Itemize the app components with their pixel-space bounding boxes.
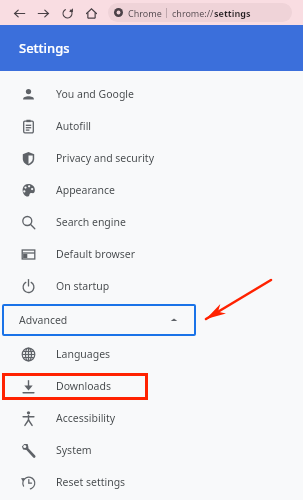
button[interactable]: Back bbox=[10, 4, 28, 22]
staticText: chrome:// bbox=[172, 7, 214, 19]
staticText: settings bbox=[214, 7, 251, 19]
staticText: You and Google bbox=[56, 87, 134, 101]
staticText: Accessibility bbox=[56, 411, 116, 425]
button[interactable]: Default browser bbox=[0, 238, 303, 270]
staticText: On startup bbox=[56, 279, 110, 293]
staticText: Search engine bbox=[56, 215, 126, 229]
staticText: Advanced bbox=[19, 313, 68, 327]
button[interactable]: Reset settings bbox=[0, 466, 303, 498]
button[interactable]: Reload bbox=[58, 4, 76, 22]
button[interactable]: You and Google bbox=[0, 78, 303, 110]
staticText: Autofill bbox=[56, 119, 92, 133]
button[interactable]: Languages bbox=[0, 338, 303, 370]
button[interactable]: Privacy and security bbox=[0, 142, 303, 174]
staticText: Settings bbox=[19, 39, 70, 57]
staticText: Appearance bbox=[56, 183, 115, 197]
button[interactable]: Home bbox=[82, 4, 100, 22]
button[interactable]: Downloads bbox=[0, 370, 303, 402]
staticText: Reset settings bbox=[56, 475, 126, 489]
button[interactable]: On startup bbox=[0, 270, 303, 302]
button[interactable]: Accessibility bbox=[0, 402, 303, 434]
button[interactable]: Autofill bbox=[0, 110, 303, 142]
staticText: System bbox=[56, 443, 92, 457]
button[interactable]: Appearance bbox=[0, 174, 303, 206]
button[interactable]: Search engine bbox=[0, 206, 303, 238]
button[interactable]: Chrome bbox=[108, 3, 292, 22]
staticText: Downloads bbox=[56, 379, 111, 393]
button[interactable]: Advanced bbox=[2, 304, 196, 336]
staticText: Chrome bbox=[128, 7, 162, 19]
staticText: Default browser bbox=[56, 247, 136, 261]
staticText: Privacy and security bbox=[56, 151, 154, 165]
staticText: Languages bbox=[56, 347, 111, 361]
button[interactable]: System bbox=[0, 434, 303, 466]
button[interactable]: Forward bbox=[34, 4, 52, 22]
